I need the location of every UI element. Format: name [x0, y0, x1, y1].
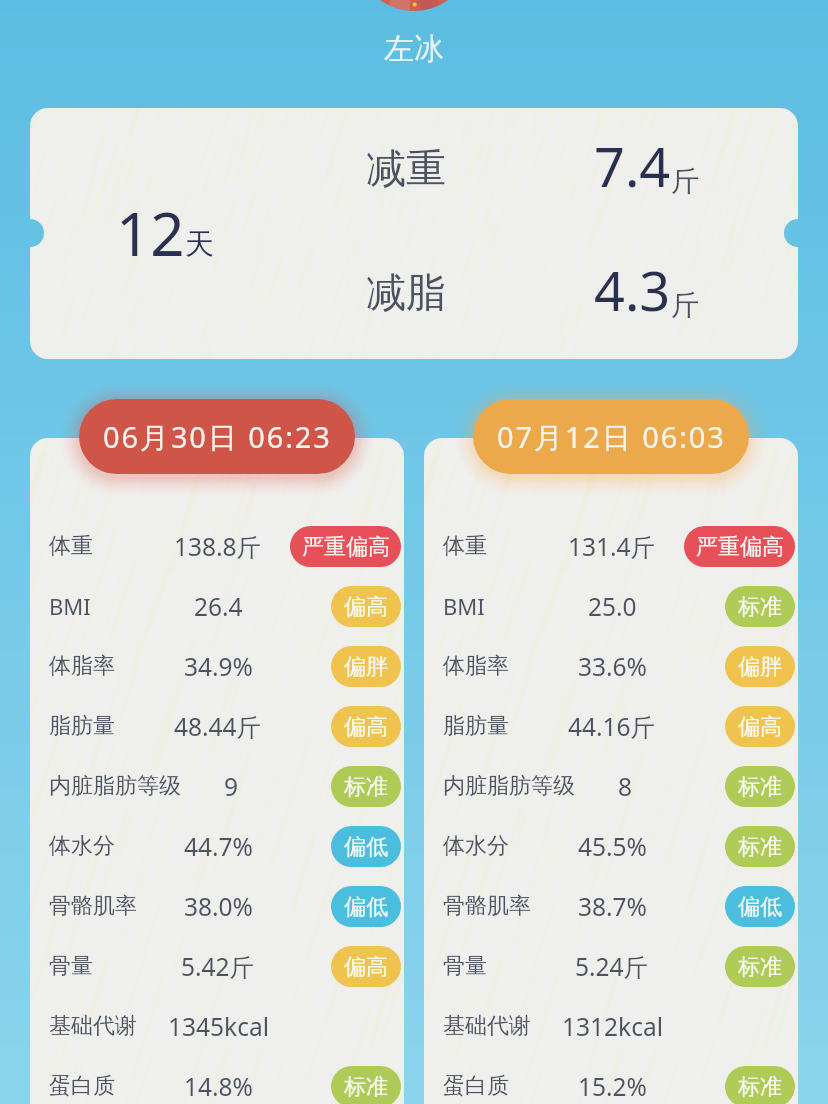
staticText: 06月30日 06:23 — [103, 417, 332, 457]
staticText: 偏胖 — [344, 653, 388, 681]
staticText: 12 — [116, 192, 185, 274]
button[interactable]: 体重 — [424, 516, 798, 576]
button[interactable]: 骨骼肌率 — [424, 876, 798, 936]
button[interactable]: Profile avatar — [356, 0, 472, 11]
staticText: 45.5% — [578, 830, 647, 863]
staticText: 体水分 — [443, 832, 509, 860]
staticText: 9 — [224, 770, 239, 803]
staticText: 标准 — [738, 953, 782, 981]
button[interactable]: 标准 — [725, 826, 795, 867]
staticText: 体脂率 — [443, 652, 509, 680]
staticText: 8 — [618, 770, 633, 803]
staticText: 14.8% — [184, 1070, 253, 1103]
staticText: 减脂 — [366, 267, 446, 317]
staticText: 斤 — [671, 164, 699, 199]
staticText: 斤 — [671, 288, 699, 323]
button[interactable]: 基础代谢 — [30, 996, 404, 1056]
staticText: 体重 — [443, 532, 487, 560]
staticText: 7.4 — [594, 129, 671, 203]
button[interactable]: 偏低 — [331, 886, 401, 927]
staticText: 骨骼肌率 — [443, 892, 531, 920]
staticText: 33.6% — [578, 650, 647, 683]
button[interactable]: 标准 — [331, 766, 401, 807]
button[interactable]: 体重 — [30, 438, 404, 1104]
staticText: 偏低 — [344, 833, 388, 861]
staticText: BMI — [443, 591, 485, 621]
staticText: 5.42斤 — [181, 950, 255, 983]
button[interactable]: 内脏脂肪等级 — [424, 756, 798, 816]
button[interactable]: 标准 — [331, 1066, 401, 1104]
staticText: 偏高 — [344, 593, 388, 621]
button[interactable]: 体水分 — [30, 816, 404, 876]
staticText: 131.4斤 — [568, 530, 656, 563]
button[interactable]: 12 — [30, 108, 798, 359]
staticText: 07月12日 06:03 — [497, 417, 726, 457]
staticText: 标准 — [738, 593, 782, 621]
staticText: 脂肪量 — [49, 712, 115, 740]
staticText: 4.3 — [594, 253, 671, 327]
button[interactable]: 骨量 — [30, 936, 404, 996]
button[interactable]: 蛋白质 — [424, 1056, 798, 1104]
staticText: 34.9% — [184, 650, 253, 683]
staticText: 标准 — [344, 773, 388, 801]
staticText: 内脏脂肪等级 — [49, 772, 181, 800]
button[interactable]: 骨骼肌率 — [30, 876, 404, 936]
button[interactable]: 体水分 — [424, 816, 798, 876]
button[interactable]: 骨量 — [424, 936, 798, 996]
button[interactable]: 标准 — [725, 1066, 795, 1104]
staticText: 骨量 — [443, 952, 487, 980]
button[interactable]: 严重偏高 — [290, 526, 401, 567]
staticText: 偏低 — [738, 893, 782, 921]
button[interactable]: 标准 — [725, 586, 795, 627]
button[interactable]: 偏胖 — [331, 646, 401, 687]
button[interactable]: 偏高 — [331, 586, 401, 627]
button[interactable]: 标准 — [725, 766, 795, 807]
button[interactable]: 严重偏高 — [684, 526, 795, 567]
button[interactable]: 07月12日 06:03 — [473, 399, 749, 474]
staticText: 偏低 — [344, 893, 388, 921]
staticText: 蛋白质 — [49, 1072, 115, 1100]
button[interactable]: 偏高 — [331, 706, 401, 747]
staticText: 脂肪量 — [443, 712, 509, 740]
button[interactable]: 体重 — [424, 438, 798, 1104]
button[interactable]: 脂肪量 — [30, 696, 404, 756]
staticText: 严重偏高 — [696, 533, 784, 561]
staticText: 减重 — [366, 143, 446, 193]
button[interactable]: 偏胖 — [725, 646, 795, 687]
staticText: 左冰 — [0, 30, 828, 68]
staticText: 44.16斤 — [568, 710, 656, 743]
staticText: 体脂率 — [49, 652, 115, 680]
staticText: 骨量 — [49, 952, 93, 980]
button[interactable]: 基础代谢 — [424, 996, 798, 1056]
staticText: 1312kcal — [562, 1010, 663, 1043]
button[interactable]: 偏高 — [725, 706, 795, 747]
button[interactable]: BMI — [30, 576, 404, 636]
button[interactable]: 偏高 — [331, 946, 401, 987]
button[interactable]: 内脏脂肪等级 — [30, 756, 404, 816]
staticText: 44.7% — [184, 830, 253, 863]
staticText: 偏高 — [344, 953, 388, 981]
staticText: 5.24斤 — [575, 950, 649, 983]
button[interactable]: 06月30日 06:23 — [79, 399, 355, 474]
button[interactable]: 偏低 — [725, 886, 795, 927]
button[interactable]: 蛋白质 — [30, 1056, 404, 1104]
staticText: 1345kcal — [168, 1010, 269, 1043]
button[interactable]: 偏低 — [331, 826, 401, 867]
staticText: 体重 — [49, 532, 93, 560]
button[interactable]: 体重 — [30, 516, 404, 576]
staticText: 标准 — [738, 833, 782, 861]
button[interactable]: BMI — [424, 576, 798, 636]
button[interactable]: 体脂率 — [424, 636, 798, 696]
staticText: 体水分 — [49, 832, 115, 860]
staticText: 内脏脂肪等级 — [443, 772, 575, 800]
staticText: 138.8斤 — [174, 530, 262, 563]
button[interactable]: 脂肪量 — [424, 696, 798, 756]
staticText: 偏高 — [344, 713, 388, 741]
button[interactable]: 标准 — [725, 946, 795, 987]
button[interactable]: 体脂率 — [30, 636, 404, 696]
staticText: 偏高 — [738, 713, 782, 741]
staticText: BMI — [49, 591, 91, 621]
staticText: 骨骼肌率 — [49, 892, 137, 920]
staticText: 蛋白质 — [443, 1072, 509, 1100]
staticText: 基础代谢 — [443, 1012, 531, 1040]
